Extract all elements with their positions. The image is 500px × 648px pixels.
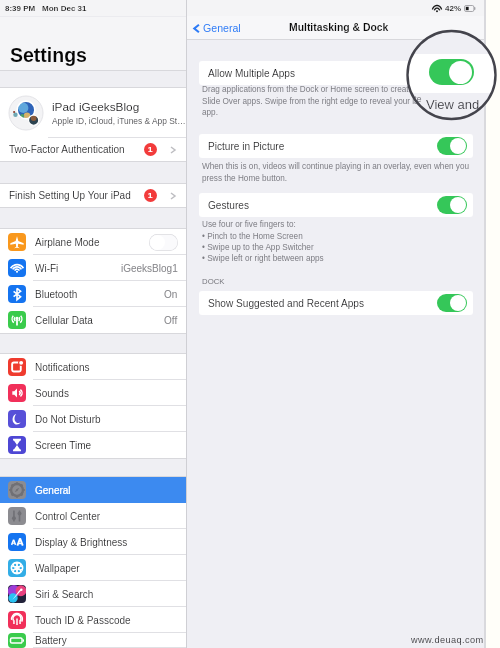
- button[interactable]: Touch ID & Passcode: [0, 607, 186, 633]
- staticText: Display & Brightness: [35, 537, 128, 548]
- staticText: Multitasking & Dock: [289, 22, 389, 34]
- button[interactable]: Airplane Mode: [0, 229, 186, 255]
- staticText: ur la: [408, 104, 420, 114]
- staticText: 1: [148, 145, 153, 154]
- staticText: Drag applications from the Dock or Home …: [202, 85, 425, 116]
- staticText: Wallpaper: [35, 563, 80, 574]
- staticText: Apple ID, iCloud, iTunes & App St…: [52, 116, 186, 125]
- button[interactable]: [437, 64, 467, 82]
- staticText: www.deuaq.com: [411, 635, 484, 645]
- staticText: View and: [426, 97, 480, 112]
- button[interactable]: [149, 234, 178, 251]
- staticText: Picture in Picture: [208, 141, 285, 152]
- staticText: Off: [164, 315, 178, 326]
- staticText: Finish Setting Up Your iPad: [9, 190, 131, 201]
- button[interactable]: Picture in Picture: [199, 134, 473, 158]
- button[interactable]: Gestures: [199, 193, 473, 217]
- staticText: Show Suggested and Recent Apps: [208, 298, 365, 309]
- button[interactable]: General: [191, 22, 241, 34]
- button[interactable]: Screen Time: [0, 432, 186, 458]
- staticText: 8:39 PM: [5, 4, 36, 13]
- button[interactable]: Finish Setting Up Your iPad: [0, 184, 186, 207]
- button[interactable]: General: [0, 477, 186, 503]
- button[interactable]: Sounds: [0, 380, 186, 406]
- staticText: eate: [408, 94, 422, 104]
- staticText: Do Not Disturb: [35, 414, 101, 425]
- staticText: Touch ID & Passcode: [35, 615, 131, 626]
- button[interactable]: Siri & Search: [0, 581, 186, 607]
- staticText: 1: [148, 191, 153, 200]
- staticText: Screen Time: [35, 440, 92, 451]
- button[interactable]: Show Suggested and Recent Apps: [199, 291, 473, 315]
- button[interactable]: Wi-Fi: [0, 255, 186, 281]
- staticText: Control Center: [35, 511, 101, 522]
- staticText: Mon Dec 31: [42, 4, 87, 13]
- staticText: Over: [436, 115, 465, 119]
- button[interactable]: Bluetooth: [0, 281, 186, 307]
- button[interactable]: [437, 294, 467, 312]
- staticText: iPad iGeeksBlog: [52, 100, 140, 113]
- staticText: Airplane Mode: [35, 237, 100, 248]
- staticText: Allow Multiple Apps: [208, 68, 295, 79]
- button[interactable]: [437, 196, 467, 214]
- button[interactable]: Display & Brightness: [0, 529, 186, 555]
- button[interactable]: Notifications: [0, 354, 186, 380]
- staticText: Sounds: [35, 388, 69, 399]
- staticText: Cellular Data: [35, 315, 93, 326]
- staticText: Notifications: [35, 362, 90, 373]
- staticText: Two-Factor Authentication: [9, 144, 125, 155]
- staticText: Bluetooth: [35, 289, 78, 300]
- button[interactable]: [437, 137, 467, 155]
- staticText: iGeeksBlog1: [121, 263, 178, 274]
- staticText: Battery: [35, 635, 67, 646]
- button[interactable]: Cellular Data: [0, 307, 186, 333]
- button[interactable]: Wallpaper: [0, 555, 186, 581]
- staticText: Use four or five fingers to: • Pinch to …: [202, 220, 324, 262]
- button[interactable]: Allow Multiple Apps: [199, 61, 473, 85]
- staticText: 42%: [445, 4, 462, 13]
- staticText: Wi-Fi: [35, 263, 59, 274]
- staticText: On: [164, 289, 178, 300]
- staticText: DOCK: [202, 277, 225, 286]
- staticText: General: [203, 22, 241, 34]
- button[interactable]: iPad iGeeksBlog: [0, 88, 186, 137]
- staticText: Siri & Search: [35, 589, 94, 600]
- staticText: General: [35, 485, 71, 496]
- staticText: Settings: [10, 44, 87, 66]
- button[interactable]: Do Not Disturb: [0, 406, 186, 432]
- button[interactable]: Two-Factor Authentication: [0, 138, 186, 161]
- button[interactable]: Control Center: [0, 503, 186, 529]
- button[interactable]: Battery: [0, 633, 186, 648]
- staticText: Gestures: [208, 200, 249, 211]
- staticText: When this is on, videos will continue pl…: [202, 162, 470, 182]
